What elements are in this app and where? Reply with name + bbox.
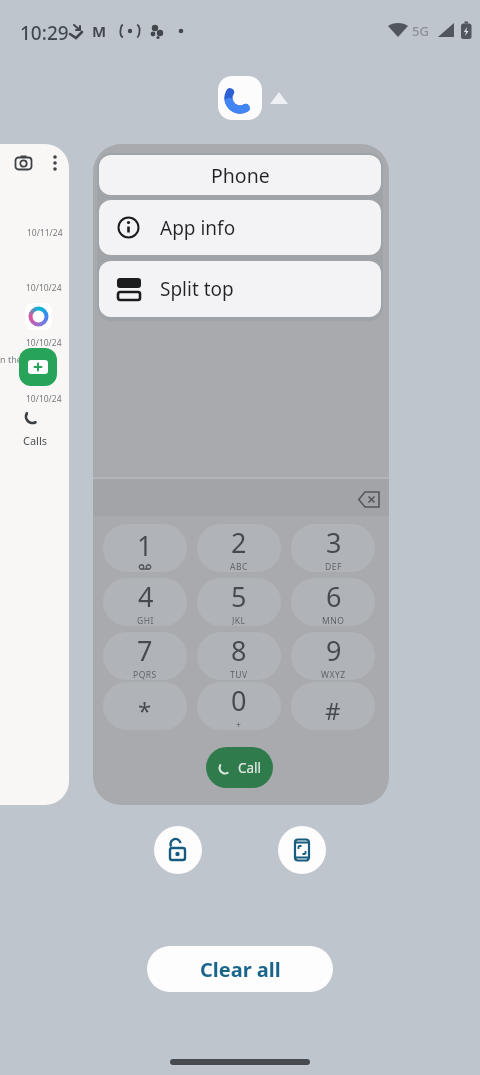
- staticText: PQRS: [133, 669, 157, 680]
- staticText: 10/10/24: [26, 337, 62, 349]
- staticText: DEF: [325, 561, 342, 572]
- staticText: JKL: [232, 615, 246, 626]
- button[interactable]: [278, 826, 326, 874]
- staticText: WXYZ: [321, 669, 346, 680]
- staticText: 10/11/24: [27, 227, 63, 239]
- staticText: 10/10/24: [26, 393, 62, 405]
- staticText: n the: [0, 353, 22, 365]
- button[interactable]: 5: [197, 578, 281, 626]
- staticText: 8: [231, 632, 247, 669]
- staticText: 1: [137, 527, 153, 564]
- button[interactable]: 10/11/24: [0, 144, 69, 805]
- staticText: 5: [231, 578, 247, 615]
- button[interactable]: 1: [93, 144, 389, 805]
- staticText: 2: [231, 524, 247, 561]
- button[interactable]: *: [103, 682, 187, 730]
- button[interactable]: [154, 826, 202, 874]
- button[interactable]: App info: [99, 200, 381, 255]
- button[interactable]: [218, 76, 262, 120]
- staticText: M: [92, 21, 107, 41]
- staticText: App info: [160, 215, 236, 241]
- staticText: 9: [326, 632, 342, 669]
- button[interactable]: 1: [103, 524, 187, 572]
- button[interactable]: 0: [197, 682, 281, 730]
- staticText: Call: [238, 759, 262, 777]
- button[interactable]: 9: [291, 632, 375, 680]
- staticText: Clear all: [200, 956, 281, 983]
- button[interactable]: 4: [103, 578, 187, 626]
- staticText: +: [236, 719, 242, 730]
- button[interactable]: 8: [197, 632, 281, 680]
- staticText: Phone: [211, 162, 270, 189]
- button[interactable]: Split top: [99, 261, 381, 317]
- staticText: GHI: [137, 615, 154, 626]
- staticText: TUV: [230, 669, 248, 680]
- staticText: *: [138, 694, 152, 727]
- staticText: ABC: [230, 561, 248, 572]
- staticText: #: [325, 694, 341, 727]
- staticText: 7: [137, 632, 153, 669]
- staticText: Calls: [23, 433, 48, 448]
- staticText: Split top: [160, 276, 234, 302]
- staticText: 10/10/24: [26, 282, 62, 294]
- staticText: 5G: [412, 22, 429, 40]
- button[interactable]: #: [291, 682, 375, 730]
- staticText: 0: [231, 682, 247, 719]
- button[interactable]: 3: [291, 524, 375, 572]
- staticText: MNO: [322, 615, 345, 626]
- button[interactable]: 2: [197, 524, 281, 572]
- staticText: 4: [138, 578, 154, 615]
- staticText: 10:29: [20, 20, 69, 46]
- button[interactable]: 7: [103, 632, 187, 680]
- button[interactable]: Call: [206, 747, 273, 788]
- staticText: 6: [326, 578, 342, 615]
- button[interactable]: Clear all: [147, 946, 333, 992]
- staticText: 3: [326, 524, 342, 561]
- button[interactable]: 6: [291, 578, 375, 626]
